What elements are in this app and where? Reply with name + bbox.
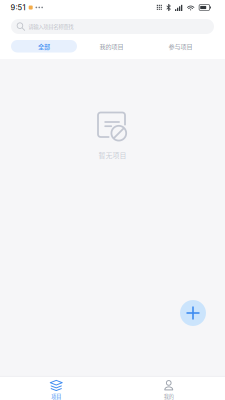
button[interactable]: 新建项目	[180, 300, 206, 326]
staticText: 9:51	[10, 3, 25, 12]
staticText: 暂无项目	[98, 150, 126, 160]
button[interactable]: 项目	[0, 379, 112, 400]
staticText: 我的项目	[99, 42, 123, 51]
button[interactable]: 参与项目	[146, 40, 215, 52]
button[interactable]: 我的	[112, 379, 225, 400]
staticText: 我的	[164, 393, 174, 400]
staticText: 参与项目	[168, 42, 192, 51]
button[interactable]: 请输入项目名称查找	[11, 19, 214, 34]
staticText: 请输入项目名称查找	[28, 23, 73, 30]
button[interactable]: 全部	[11, 40, 77, 52]
staticText: 全部	[38, 42, 50, 51]
button[interactable]: 我的项目	[77, 40, 146, 52]
staticText: 项目	[51, 393, 61, 400]
